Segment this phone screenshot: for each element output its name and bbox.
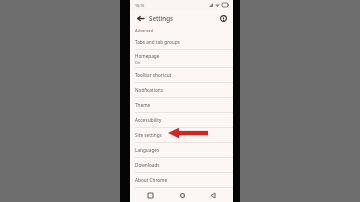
- staticText: Settings: [149, 14, 174, 22]
- button[interactable]: Tabs and tab groups: [130, 35, 233, 49]
- staticText: On: [135, 60, 141, 65]
- staticText: Site settings: [135, 132, 162, 138]
- staticText: Tabs and tab groups: [135, 39, 180, 45]
- button[interactable]: Home: [176, 189, 188, 201]
- button[interactable]: Notifications: [130, 83, 233, 97]
- staticText: Accessibility: [135, 117, 162, 123]
- button[interactable]: Languages: [130, 143, 233, 157]
- button[interactable]: Back: [134, 12, 146, 24]
- button[interactable]: Theme: [130, 98, 233, 112]
- button[interactable]: Homepage: [130, 50, 233, 67]
- button[interactable]: Recent apps: [144, 189, 156, 201]
- staticText: Downloads: [135, 162, 160, 168]
- button[interactable]: Downloads: [130, 158, 233, 172]
- staticText: Advanced: [135, 28, 154, 33]
- staticText: 10:16: [135, 3, 145, 8]
- button[interactable]: Toolbar shortcut: [130, 68, 233, 82]
- staticText: Toolbar shortcut: [135, 72, 172, 78]
- button[interactable]: Accessibility: [130, 113, 233, 127]
- staticText: Notifications: [135, 87, 163, 93]
- button[interactable]: Back: [207, 189, 219, 201]
- button[interactable]: About Chrome: [130, 173, 233, 187]
- staticText: Theme: [135, 102, 151, 108]
- staticText: About Chrome: [135, 177, 168, 183]
- staticText: Languages: [135, 147, 160, 153]
- staticText: Homepage: [135, 53, 160, 59]
- button[interactable]: Help and feedback: [217, 12, 229, 24]
- button[interactable]: Site settings: [130, 128, 233, 142]
